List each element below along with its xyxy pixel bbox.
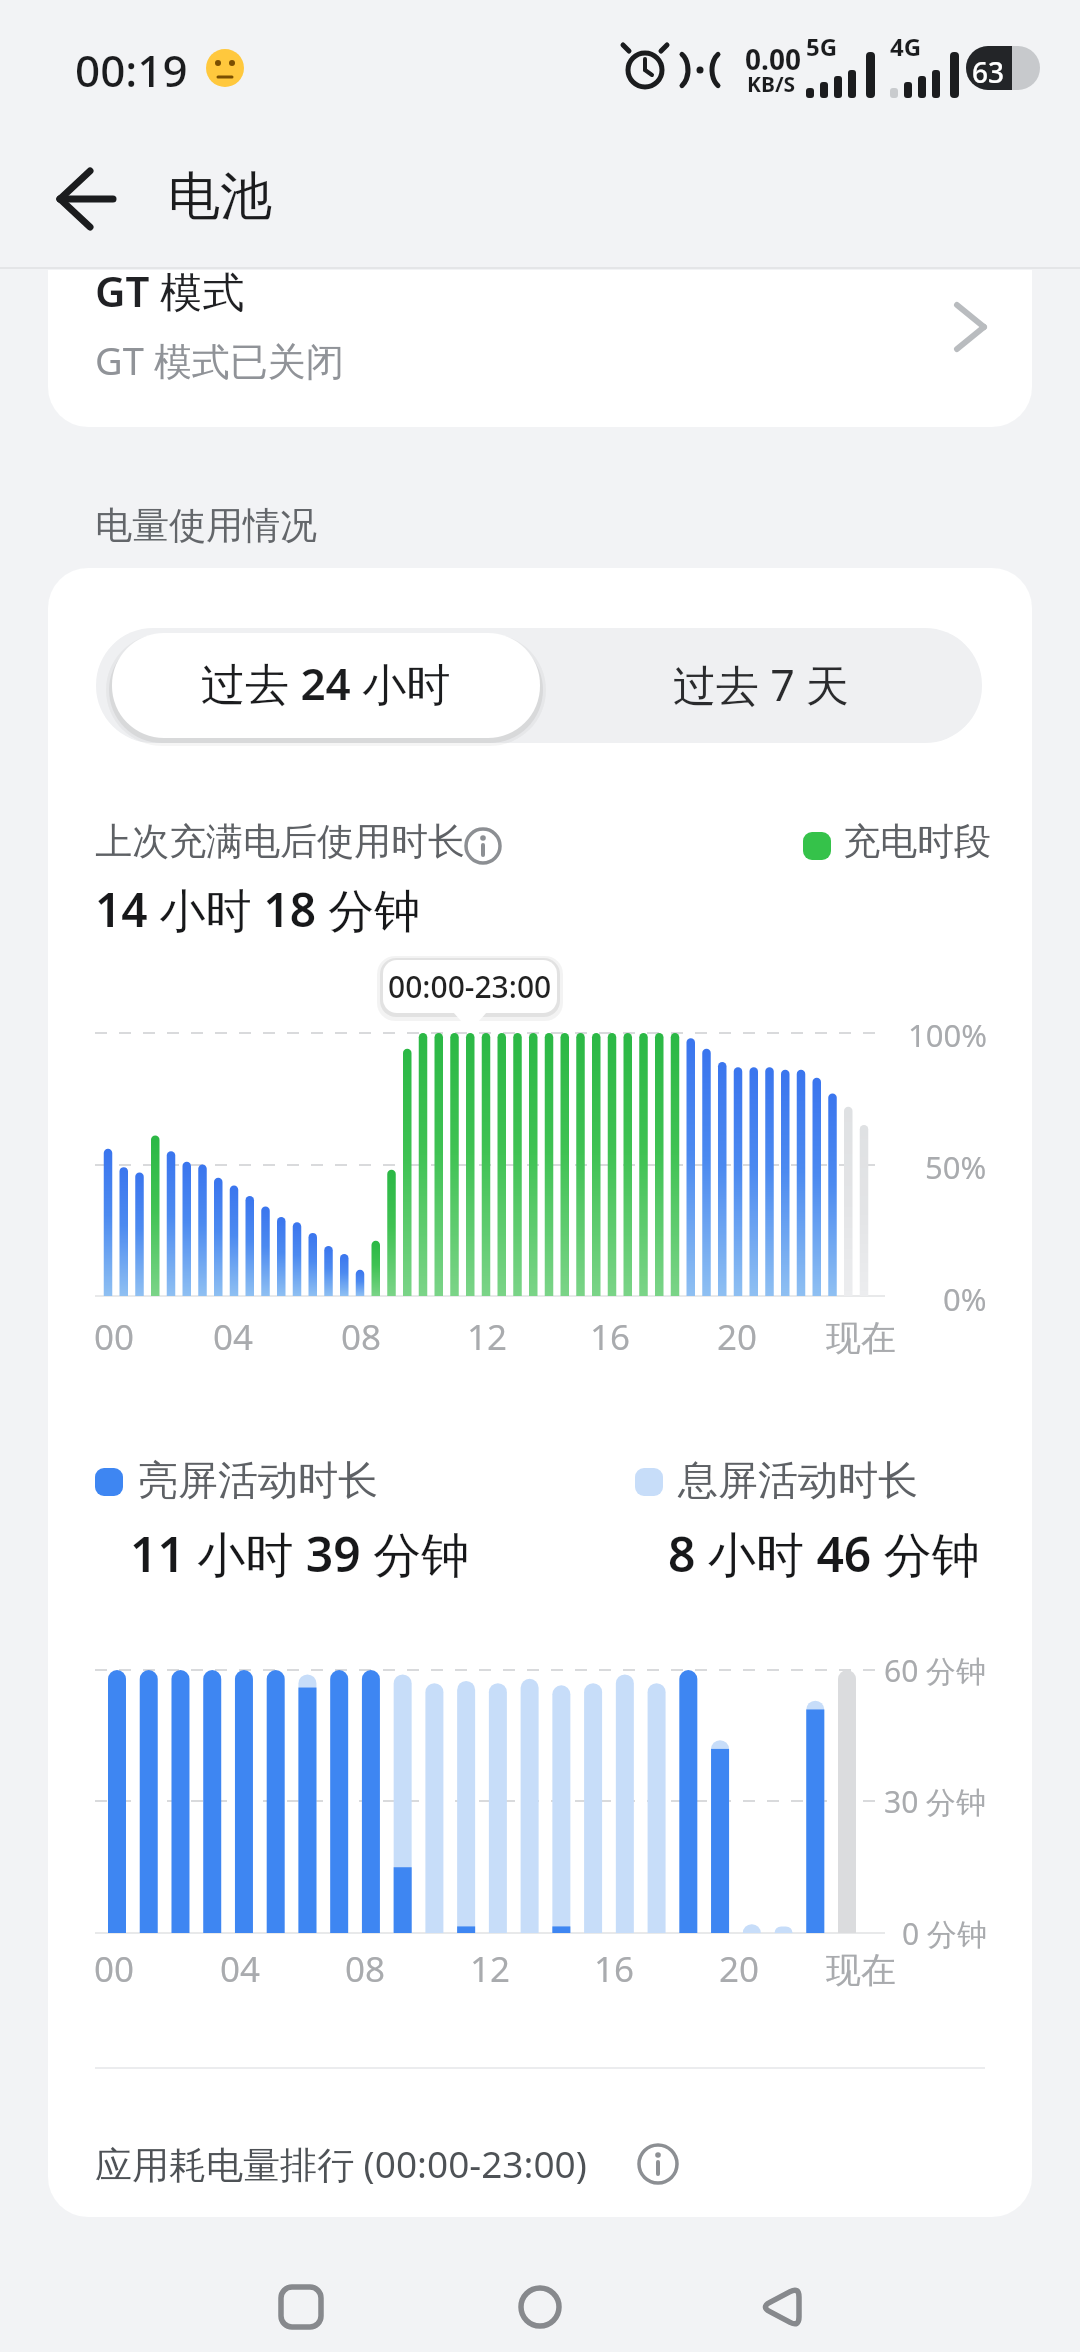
staticText: 04 [220,1945,261,1993]
button[interactable] [255,2262,345,2352]
staticText: 过去 24 小时 [201,653,451,713]
button[interactable] [735,2262,825,2352]
staticText: 电量使用情况 [95,502,317,549]
staticText: 14 小时 18 分钟 [95,878,421,941]
staticText: 0.00 [745,40,801,78]
button[interactable] [112,633,540,738]
button[interactable] [48,270,1032,427]
staticText: 过去 7 天 [673,655,849,714]
staticText: 60 分钟 [884,1650,987,1691]
staticText: 12 [470,1945,511,1993]
staticText: 5G [806,30,838,63]
staticText: 充电时段 [843,818,991,865]
staticText: 上次充满电后使用时长 [95,818,465,865]
staticText: 应用耗电量排行 (00:00-23:00) [95,2138,587,2189]
staticText: 16 [594,1945,635,1993]
staticText: 08 [345,1945,386,1993]
staticText: 现在 [826,1316,896,1360]
button[interactable] [495,2262,585,2352]
staticText: 00:00-23:00 [388,966,552,1007]
staticText: 30 分钟 [884,1781,987,1822]
staticText: 04 [213,1313,254,1361]
staticText: 50% [925,1146,987,1188]
staticText: 0 分钟 [902,1913,987,1954]
staticText: 16 [590,1313,631,1361]
staticText: 11 小时 39 分钟 [130,1521,470,1587]
staticText: 08 [341,1313,382,1361]
button[interactable] [540,633,982,738]
button[interactable] [40,160,130,240]
staticText: 0% [943,1278,987,1320]
staticText: GT 模式已关闭 [95,334,344,386]
staticText: 12 [467,1313,508,1361]
staticText: 20 [719,1945,760,1993]
staticText: 电池 [168,164,272,230]
staticText: GT 模式 [95,262,245,319]
staticText: 100% [908,1014,987,1056]
staticText: 息屏活动时长 [678,1455,918,1505]
staticText: 20 [717,1313,758,1361]
staticText: 00 [94,1313,135,1361]
staticText: 现在 [826,1948,896,1992]
staticText: 00:19 [75,40,188,100]
staticText: 8 小时 46 分钟 [668,1521,980,1587]
staticText: 亮屏活动时长 [138,1455,378,1505]
staticText: KB/S [747,70,796,99]
staticText: 63 [972,53,1005,91]
staticText: 4G [890,30,922,63]
staticText: 00 [94,1945,135,1993]
